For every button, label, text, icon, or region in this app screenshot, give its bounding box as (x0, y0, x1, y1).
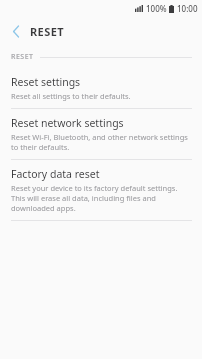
staticText: Factory data reset (11, 167, 100, 181)
staticText: RESET (11, 52, 34, 62)
staticText: Reset all settings to their defaults. (11, 91, 131, 101)
staticText: 10:00 (177, 3, 198, 14)
staticText: 100% (146, 3, 167, 14)
staticText: RESET (30, 24, 64, 39)
staticText: Reset settings (11, 75, 81, 89)
button[interactable]: Reset network settings (0, 109, 202, 159)
button[interactable]: Reset settings (0, 68, 202, 108)
button[interactable]: Factory data reset (0, 160, 202, 220)
staticText: Reset Wi-Fi, Bluetooth, and other networ… (11, 132, 190, 152)
staticText: Reset your device to its factory default… (11, 183, 190, 213)
staticText: Reset network settings (11, 116, 124, 130)
button[interactable]: Back (6, 21, 26, 41)
